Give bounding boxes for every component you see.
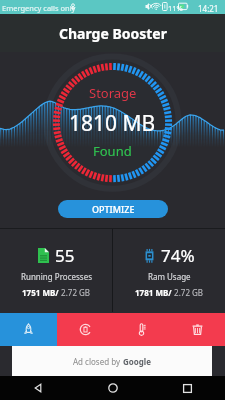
button[interactable]: Back (0, 376, 75, 400)
staticText: Ram Usage (148, 271, 191, 282)
staticText: Running Processes (21, 271, 92, 282)
staticText: 14:21 (198, 3, 219, 14)
button[interactable]: Recent apps (150, 376, 225, 400)
staticText: 1781 MB/ (135, 287, 172, 298)
staticText: Ad closed by (73, 356, 123, 367)
button[interactable]: Home (75, 376, 150, 400)
staticText: OPTIMIZE (92, 203, 135, 215)
staticText: 55 (55, 244, 75, 267)
button[interactable]: Battery saver (57, 313, 113, 346)
staticText: Storage (89, 84, 137, 102)
button[interactable]: 74% (113, 229, 225, 312)
staticText: Found (93, 142, 132, 160)
staticText: Emergency calls only (2, 3, 76, 13)
staticText: Charge Booster (59, 24, 167, 43)
button[interactable]: CPU cooler (113, 313, 169, 346)
staticText: 1751 MB/ (22, 287, 59, 298)
staticText: 2.72 GB (172, 287, 204, 298)
button[interactable]: Boost (0, 313, 57, 346)
staticText: 11% (168, 3, 183, 13)
staticText: 74% (161, 244, 195, 267)
button[interactable]: OPTIMIZE (58, 200, 168, 218)
button[interactable]: Junk cleaner (169, 313, 225, 346)
button[interactable]: 55 (0, 229, 112, 312)
staticText: Google (123, 356, 152, 367)
staticText: 2.72 GB (59, 287, 91, 298)
staticText: 1810 MB (69, 109, 156, 138)
